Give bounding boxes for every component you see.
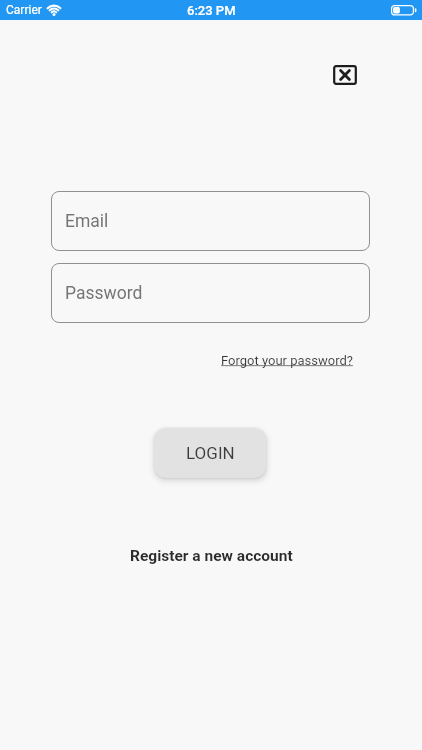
staticText: Carrier: [6, 3, 42, 17]
staticText: Email: [65, 211, 109, 232]
staticText: 6:23 PM: [187, 3, 236, 18]
staticText: Register a new account: [130, 547, 293, 565]
staticText: LOGIN: [186, 443, 235, 463]
staticText: Forgot your password?: [221, 353, 353, 368]
staticText: Password: [65, 283, 143, 304]
